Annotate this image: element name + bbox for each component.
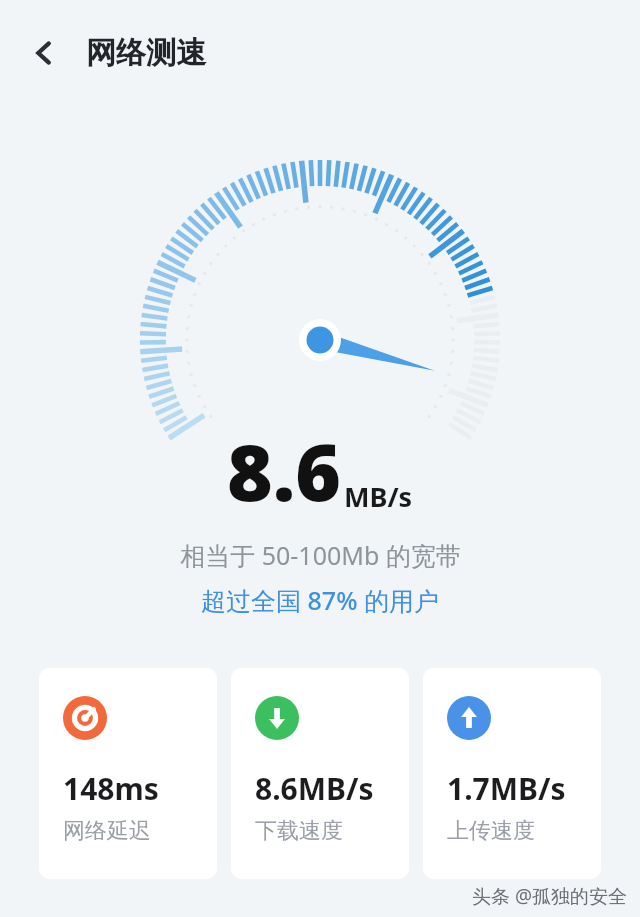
staticText: 相当于 50-100Mb 的宽带 xyxy=(180,538,461,572)
staticText: 网络测速 xyxy=(86,34,206,72)
staticText: 8.6 xyxy=(227,418,341,524)
button[interactable]: 1.7MB/s xyxy=(423,668,601,879)
staticText: 上传速度 xyxy=(447,817,535,845)
staticText: 超过全国 87% 的用户 xyxy=(201,583,439,617)
staticText: 8.6MB/s xyxy=(255,768,374,809)
staticText: 1.7MB/s xyxy=(447,768,566,809)
staticText: MB/s xyxy=(344,478,413,515)
button[interactable]: Back xyxy=(18,27,70,79)
button[interactable]: 148ms xyxy=(39,668,217,879)
button[interactable]: 8.6MB/s xyxy=(231,668,409,879)
staticText: 148ms xyxy=(63,768,159,809)
staticText: 头条 @孤独的安全 xyxy=(472,883,628,909)
staticText: 下载速度 xyxy=(255,817,343,845)
staticText: 网络延迟 xyxy=(63,817,151,845)
